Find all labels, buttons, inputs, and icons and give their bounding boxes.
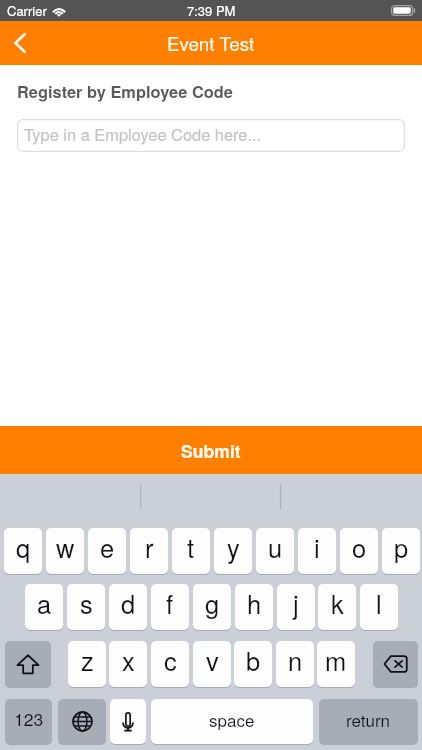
button[interactable]: d (109, 584, 147, 630)
button[interactable]: y (214, 528, 252, 574)
button[interactable]: k (318, 584, 356, 630)
button[interactable]: Back (0, 21, 44, 65)
staticText: z (81, 642, 94, 679)
staticText: j (293, 585, 299, 622)
other: Dictate (110, 699, 146, 744)
button[interactable]: Submit (0, 426, 422, 474)
staticText: d (121, 585, 136, 622)
staticText: Event Test (167, 30, 255, 57)
staticText: 123 (14, 706, 44, 731)
button[interactable]: i (298, 528, 336, 574)
button[interactable]: n (276, 641, 314, 687)
staticText: x (122, 642, 135, 679)
button[interactable]: l (360, 584, 398, 630)
staticText: Carrier (7, 1, 47, 20)
staticText: Submit (181, 438, 241, 463)
button[interactable]: return (319, 699, 418, 744)
staticText: a (37, 585, 52, 622)
button[interactable]: u (256, 528, 294, 574)
button[interactable]: m (317, 641, 355, 687)
button[interactable]: e (88, 528, 126, 574)
button[interactable]: c (151, 641, 189, 687)
other: Backspace (373, 641, 418, 687)
button[interactable]: w (46, 528, 84, 574)
staticText: b (246, 642, 261, 679)
staticText: o (352, 529, 367, 566)
button[interactable]: o (340, 528, 378, 574)
staticText: p (394, 529, 409, 566)
button[interactable]: v (193, 641, 231, 687)
button[interactable]: Shift (5, 641, 51, 687)
staticText: f (166, 585, 174, 622)
button[interactable]: 123 (5, 699, 52, 744)
button[interactable]: Backspace (373, 641, 418, 687)
staticText: u (268, 529, 283, 566)
staticText: s (80, 585, 93, 622)
button[interactable]: j (277, 584, 315, 630)
button[interactable]: q (4, 528, 42, 574)
staticText: e (100, 529, 115, 566)
button[interactable]: r (130, 528, 168, 574)
button[interactable]: g (193, 584, 231, 630)
button[interactable]: p (382, 528, 420, 574)
staticText: y (227, 529, 240, 566)
staticText: Register by Employee Code (17, 80, 233, 103)
staticText: n (288, 642, 303, 679)
button[interactable]: s (67, 584, 105, 630)
staticText: k (331, 585, 344, 622)
other: Shift (5, 641, 51, 687)
button[interactable]: t (172, 528, 210, 574)
staticText: i (314, 529, 320, 566)
staticText: m (325, 642, 347, 679)
staticText: w (56, 529, 75, 566)
staticText: v (206, 642, 219, 679)
button[interactable]: x (109, 641, 147, 687)
button[interactable]: b (234, 641, 272, 687)
staticText: r (145, 529, 154, 566)
staticText: t (187, 529, 195, 566)
staticText: l (376, 585, 382, 622)
other: Change keyboard (59, 699, 106, 744)
staticText: h (247, 585, 262, 622)
staticText: 7:39 PM (187, 1, 236, 20)
button[interactable]: a (25, 584, 63, 630)
staticText: g (205, 585, 220, 622)
button[interactable]: Change keyboard (58, 699, 106, 744)
staticText: c (164, 642, 177, 679)
button[interactable]: z (68, 641, 106, 687)
staticText: q (16, 529, 31, 566)
button[interactable]: space (151, 699, 313, 744)
staticText: return (346, 707, 391, 731)
button[interactable]: Dictate (110, 699, 146, 744)
staticText: Type in a Employee Code here... (24, 122, 262, 145)
button[interactable]: f (151, 584, 189, 630)
staticText: space (209, 707, 255, 731)
button[interactable]: h (235, 584, 273, 630)
button[interactable]: Type in a Employee Code here... (17, 119, 405, 152)
